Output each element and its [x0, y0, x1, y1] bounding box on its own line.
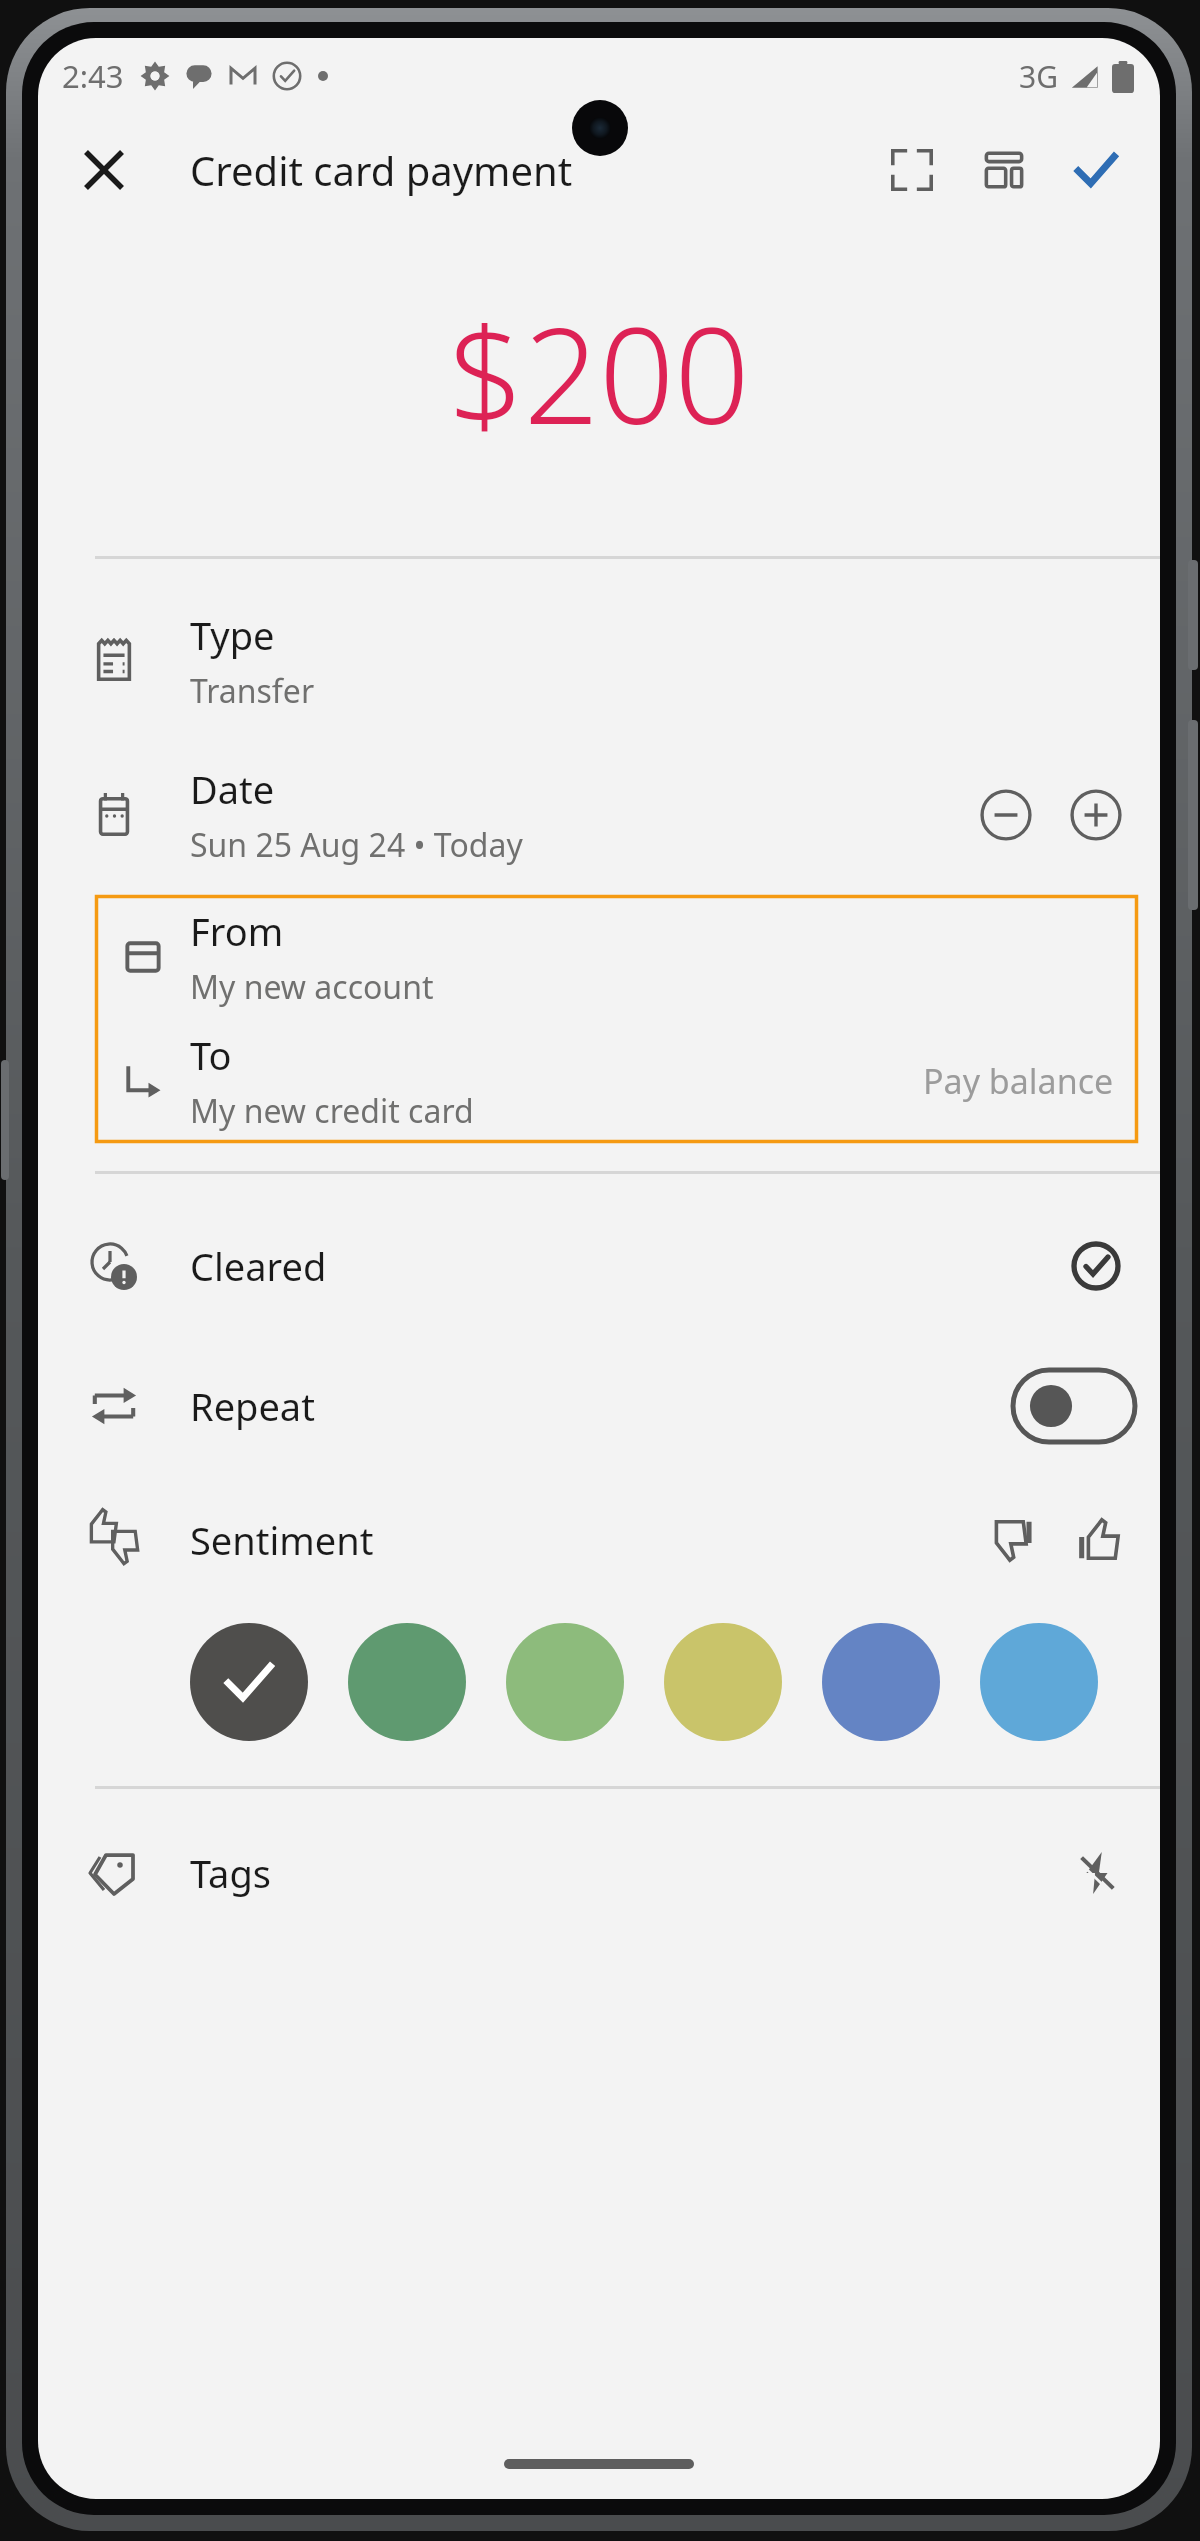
button[interactable]: Thumbs up [1056, 1498, 1140, 1582]
staticText: From [190, 905, 284, 957]
button[interactable]: From [95, 895, 1138, 1019]
staticText: Transfer [190, 669, 315, 713]
staticText: To [190, 1029, 232, 1081]
button[interactable]: To [95, 1019, 1138, 1143]
button[interactable]: Sentiment [38, 1484, 1160, 1596]
button[interactable]: Thumbs down [964, 1498, 1048, 1582]
button[interactable]: Colour 5 [822, 1623, 940, 1741]
staticText: $200 [448, 283, 750, 463]
staticText: Type [190, 609, 275, 661]
button[interactable]: Flash off [1054, 1831, 1138, 1915]
button[interactable]: Close [62, 128, 146, 212]
staticText: 2:43 [62, 55, 124, 97]
button[interactable]: Save [1054, 128, 1138, 212]
button[interactable]: Repeat [38, 1350, 1160, 1462]
button[interactable]: Repeat toggle [1010, 1367, 1138, 1445]
button[interactable]: Previous day [964, 773, 1048, 857]
button[interactable]: Layout [962, 128, 1046, 212]
staticText: Cleared [190, 1240, 327, 1292]
staticText: Pay balance [923, 1058, 1114, 1104]
button[interactable]: Scan [870, 128, 954, 212]
button[interactable]: Colour 1 [190, 1623, 308, 1741]
staticText: Date [190, 763, 275, 815]
button[interactable]: Cleared [1054, 1224, 1138, 1308]
staticText: Sun 25 Aug 24 • Today [190, 823, 523, 867]
button[interactable]: Colour 3 [506, 1623, 624, 1741]
button[interactable]: Tags [38, 1817, 1160, 1929]
staticText: 3G [1019, 56, 1058, 97]
button[interactable]: Cleared [38, 1210, 1160, 1322]
staticText: Repeat [190, 1380, 315, 1432]
staticText: Tags [190, 1847, 271, 1899]
button[interactable]: Next day [1054, 773, 1138, 857]
staticText: My new credit card [190, 1089, 474, 1133]
button[interactable]: Colour 2 [348, 1623, 466, 1741]
button[interactable]: Type [38, 601, 1160, 721]
button[interactable]: Date [38, 755, 1160, 875]
staticText: My new account [190, 965, 434, 1009]
staticText: Sentiment [190, 1514, 374, 1566]
staticText: Credit card payment [190, 143, 573, 197]
button[interactable]: Colour 4 [664, 1623, 782, 1741]
button[interactable]: Colour 6 [980, 1623, 1098, 1741]
button[interactable]: $200 [38, 226, 1160, 556]
